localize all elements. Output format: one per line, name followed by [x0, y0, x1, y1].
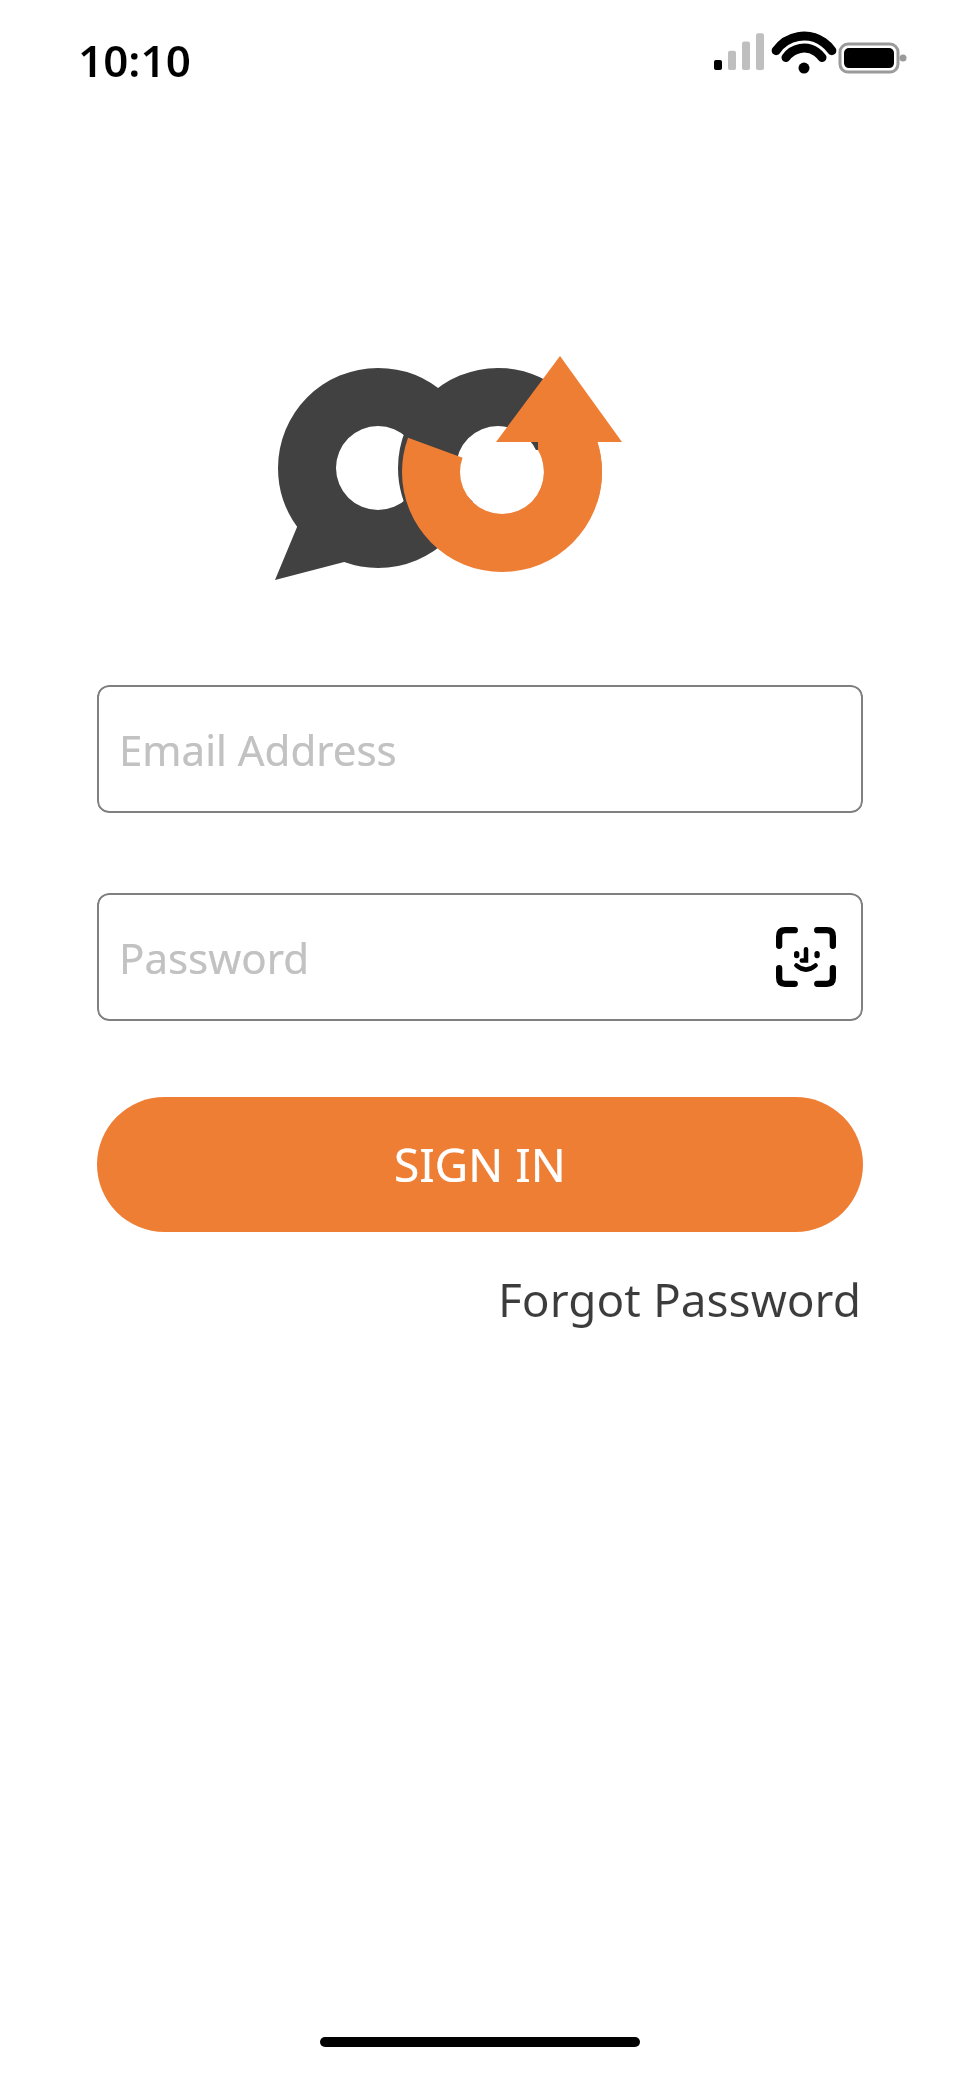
staticText: SIGN IN: [394, 1133, 566, 1196]
staticText: Password: [119, 929, 309, 986]
button[interactable]: Sign in with Face ID: [767, 918, 845, 996]
button[interactable]: Forgot Password: [496, 1260, 863, 1339]
staticText: Forgot Password: [498, 1268, 861, 1331]
button[interactable]: SIGN IN: [97, 1097, 863, 1232]
staticText: 10:10: [78, 30, 191, 90]
staticText: Email Address: [119, 721, 397, 778]
button[interactable]: Email Address: [97, 685, 863, 813]
button[interactable]: Password: [97, 893, 863, 1021]
